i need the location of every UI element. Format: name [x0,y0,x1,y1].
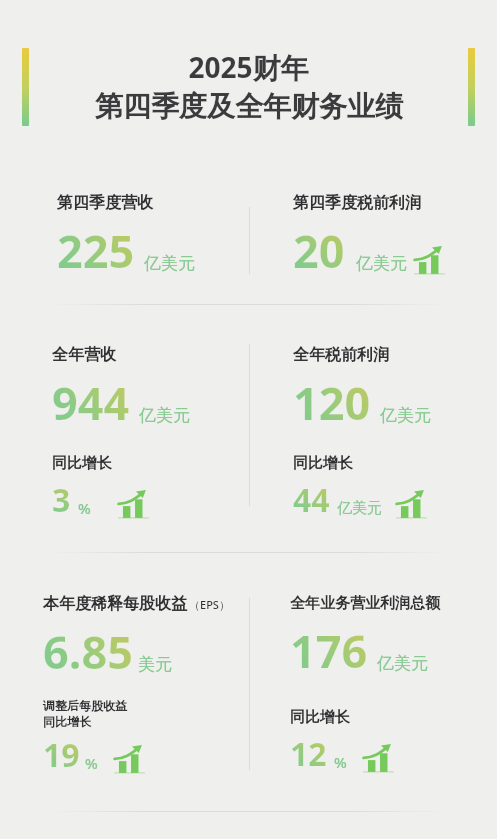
staticText: 176 [290,620,368,681]
staticText: 调整后每股收益 同比增长 [43,698,127,730]
staticText: 944 [52,372,130,433]
staticText: 亿美元 [144,253,195,274]
staticText: % [334,752,347,772]
staticText: 全年税前利润 [293,345,389,365]
button[interactable]: Growth chart [414,246,445,277]
staticText: 本年度稀释每股收益 [43,594,187,614]
staticText: 第四季度及全年财务业绩 [95,89,403,124]
button[interactable]: 全年业务营业利润总额 [290,594,440,776]
staticText: 第四季度营收 [57,193,153,213]
staticText: 3 [52,478,71,522]
staticText: 44 [293,478,330,522]
staticText: 亿美元 [139,405,190,426]
staticText: % [78,498,91,518]
staticText: 20 [293,220,345,281]
button[interactable]: Growth chart [118,490,149,521]
button[interactable]: 本年度稀释每股收益 [43,594,230,777]
staticText: 同比增长 [293,454,353,473]
staticText: 12 [290,732,327,776]
button[interactable]: 全年税前利润 [293,345,431,522]
button[interactable]: Growth chart [396,490,427,521]
staticText: 全年营收 [52,345,116,365]
staticText: 2025财年 [188,48,309,86]
staticText: 120 [293,372,371,433]
staticText: （EPS） [189,597,230,612]
button[interactable]: Growth chart [114,745,145,776]
staticText: 第四季度税前利润 [293,193,421,213]
staticText: 19 [43,733,80,777]
staticText: 亿美元 [380,405,431,426]
staticText: % [85,753,98,773]
staticText: 美元 [138,654,172,675]
staticText: 同比增长 [290,708,350,727]
staticText: 同比增长 [52,454,112,473]
staticText: 亿美元 [377,653,428,674]
staticText: 225 [57,220,135,281]
staticText: 亿美元 [337,499,382,518]
button[interactable]: 第四季度营收 [57,193,195,281]
staticText: 全年业务营业利润总额 [290,594,440,613]
staticText: 亿美元 [356,253,407,274]
button[interactable]: 全年营收 [52,345,190,522]
button[interactable]: Growth chart [363,744,394,775]
button[interactable]: 第四季度税前利润 [293,193,445,281]
staticText: 6.85 [43,621,133,682]
